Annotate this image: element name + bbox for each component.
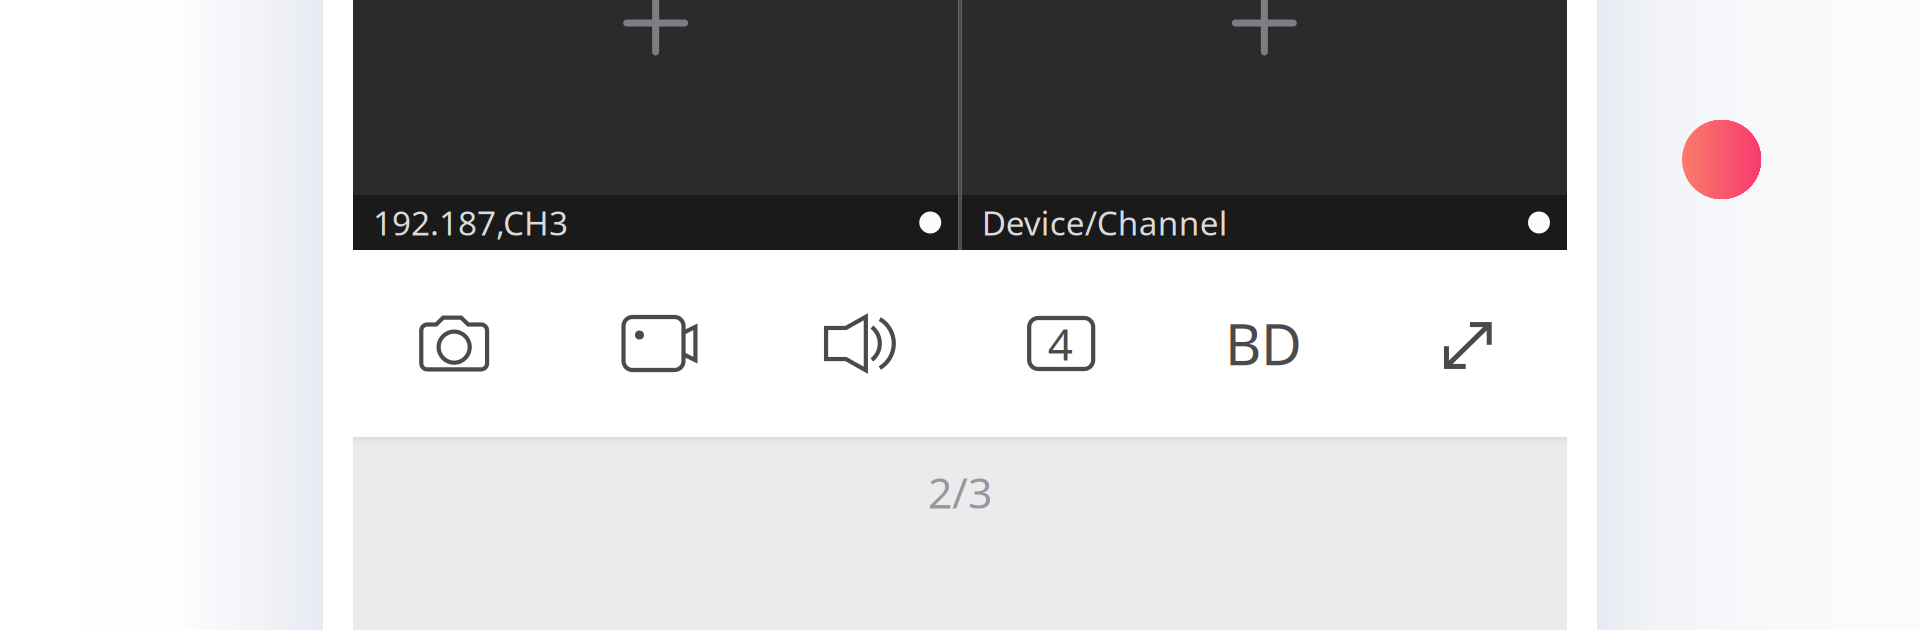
- staticText: 2/3: [928, 463, 992, 520]
- button[interactable]: Full screen: [1365, 250, 1567, 437]
- button[interactable]: Device/Channel: [962, 0, 1567, 250]
- button[interactable]: Record: [1682, 120, 1761, 199]
- staticText: BD: [1225, 306, 1302, 381]
- button[interactable]: Record: [555, 250, 758, 437]
- button[interactable]: Split view: [960, 250, 1162, 437]
- staticText: 4: [1048, 314, 1073, 373]
- button[interactable]: Snapshot: [353, 250, 555, 437]
- button[interactable]: Audio: [758, 250, 960, 437]
- button[interactable]: 192.187,CH3: [353, 0, 958, 250]
- staticText: Device/Channel: [982, 200, 1228, 245]
- button[interactable]: BD: [1162, 250, 1365, 437]
- staticText: 192.187,CH3: [373, 200, 568, 245]
